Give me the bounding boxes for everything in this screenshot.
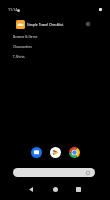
button[interactable]: Simple Travel Checklist <box>0 19 110 29</box>
button[interactable]: Browse & Items <box>0 31 110 41</box>
button[interactable]: T-Shirts <box>0 51 110 61</box>
button[interactable]: Recents <box>72 183 84 195</box>
button[interactable]: Home <box>49 183 61 195</box>
staticText: Simple Travel Checklist <box>27 22 64 27</box>
button[interactable]: Messages <box>31 147 42 158</box>
button[interactable]: Play Store <box>50 147 61 158</box>
button[interactable]: Chrome <box>69 147 80 158</box>
staticText: Browse & Items <box>13 34 38 38</box>
staticText: Chaussettes <box>13 44 32 48</box>
staticText: 11:14 <box>8 7 18 12</box>
staticText: T-Shirts <box>13 54 25 58</box>
button[interactable]: Open app <box>83 19 93 29</box>
button[interactable]: Search <box>13 168 95 177</box>
button[interactable]: Back <box>25 183 37 195</box>
button[interactable]: Chaussettes <box>0 41 110 51</box>
